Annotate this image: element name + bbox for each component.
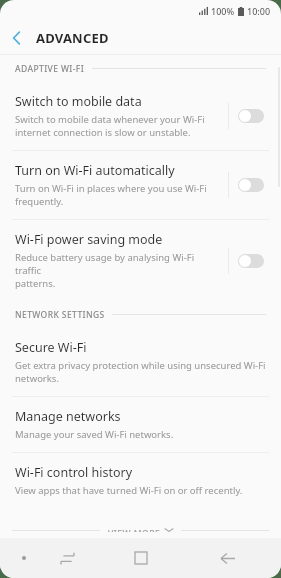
button[interactable]: Recent apps — [52, 543, 82, 573]
staticText: Wi-Fi control history — [15, 464, 133, 481]
staticText: Manage networks — [15, 408, 121, 425]
staticText: View apps that have turned Wi-Fi on or o… — [15, 484, 243, 497]
button[interactable]: Wi-Fi power saving mode — [0, 220, 281, 301]
button[interactable]: Wi-Fi power saving mode — [229, 254, 273, 268]
staticText: Manage your saved Wi-Fi networks. — [15, 428, 174, 441]
staticText: Switch to mobile data — [15, 93, 142, 110]
staticText: Reduce battery usage by analysing Wi-Fi … — [15, 251, 220, 277]
staticText: ADAPTIVE WI-FI — [15, 63, 85, 75]
button[interactable]: Switch to mobile data — [0, 82, 281, 150]
button[interactable]: Secure Wi-Fi — [0, 328, 281, 396]
button[interactable]: Back — [213, 543, 243, 573]
staticText: Turn on Wi-Fi automatically — [15, 162, 175, 179]
button[interactable]: Back — [0, 22, 32, 54]
button[interactable]: Switch to mobile data — [229, 109, 273, 123]
staticText: ADVANCED — [36, 29, 109, 47]
button[interactable]: Wi-Fi control history — [0, 453, 281, 508]
button[interactable]: Hide navigation bar — [12, 546, 36, 570]
staticText: Secure Wi-Fi — [15, 339, 87, 356]
staticText: networks. — [15, 372, 59, 385]
staticText: frequently. — [15, 195, 64, 208]
staticText: Turn on Wi-Fi in places where you use Wi… — [15, 182, 207, 195]
staticText: VIEW MORE — [108, 528, 161, 532]
staticText: Switch to mobile data whenever your Wi-F… — [15, 113, 205, 126]
button[interactable]: Turn on Wi-Fi automatically — [229, 178, 273, 192]
staticText: 10:00 — [247, 5, 271, 17]
staticText: patterns. — [15, 277, 56, 290]
button[interactable]: Home — [124, 541, 158, 575]
button[interactable]: Manage networks — [0, 397, 281, 452]
staticText: internet connection is slow or unstable. — [15, 126, 191, 139]
staticText: Get extra privacy protection while using… — [15, 359, 266, 372]
staticText: Wi-Fi power saving mode — [15, 231, 163, 248]
button[interactable]: Turn on Wi-Fi automatically — [0, 151, 281, 219]
staticText: 100% — [211, 5, 235, 17]
button[interactable]: VIEW MORE — [0, 522, 281, 538]
staticText: NETWORK SETTINGS — [15, 309, 105, 321]
